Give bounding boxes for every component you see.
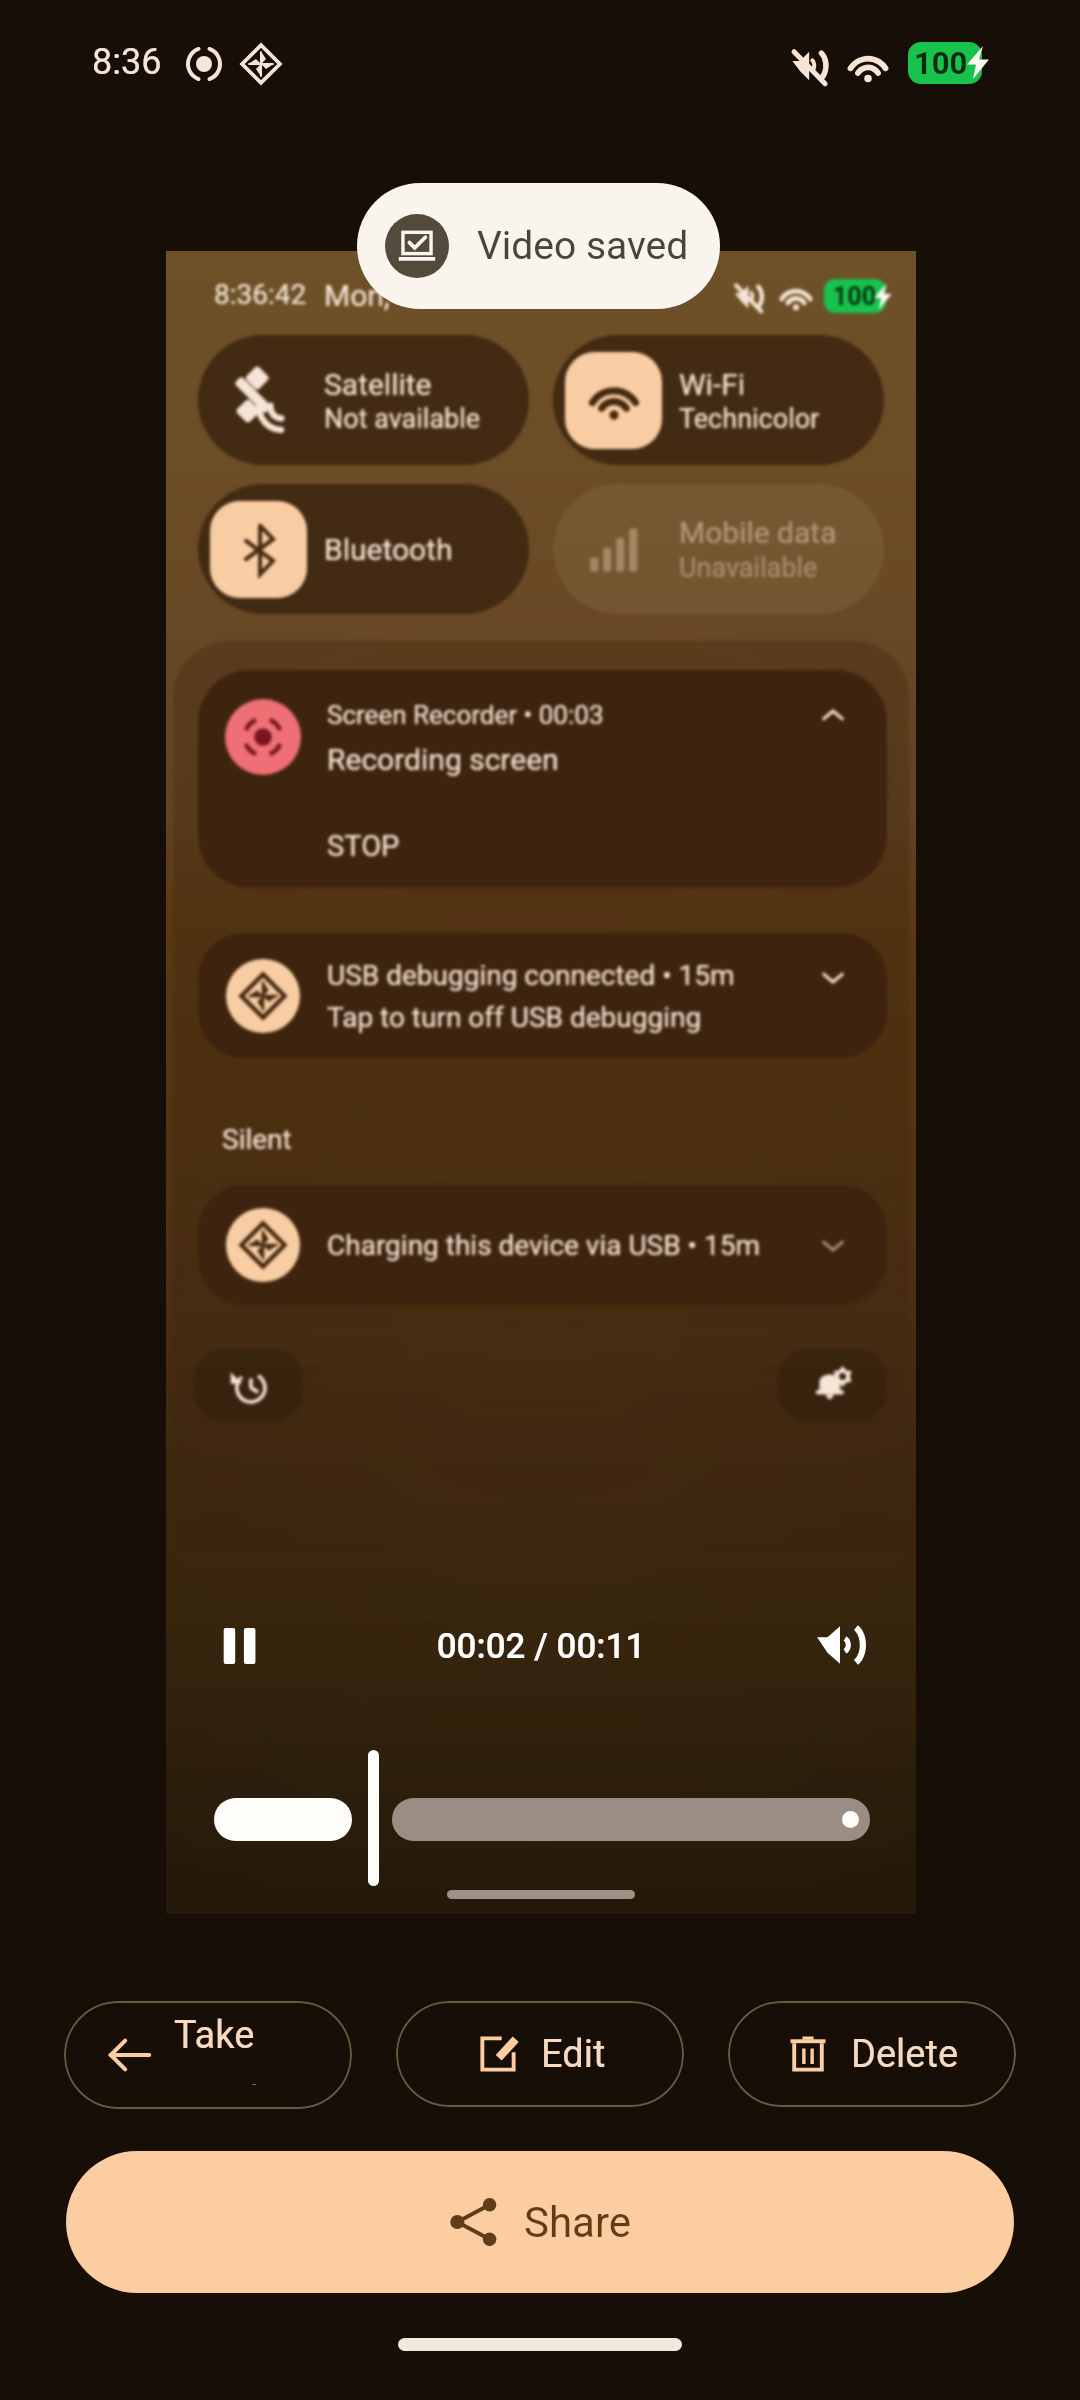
staticText: Not available — [324, 403, 481, 435]
staticText: Take another — [174, 2013, 304, 2085]
button[interactable]: Expand charging notification — [801, 1213, 865, 1277]
staticText: 8:36 — [92, 41, 162, 83]
button[interactable]: Share — [66, 2151, 1014, 2293]
button[interactable]: History — [194, 1349, 303, 1422]
staticText: Wi-Fi — [679, 367, 746, 402]
staticText: Screen Recorder • 00:03 — [327, 700, 604, 730]
button[interactable]: Delete — [728, 2001, 1016, 2107]
button[interactable]: Volume — [814, 1619, 866, 1671]
staticText: Recording screen — [327, 742, 559, 777]
staticText: Delete — [851, 2032, 959, 2077]
button[interactable]: STOP — [313, 818, 433, 874]
button[interactable]: Bluetooth — [198, 484, 529, 614]
button[interactable]: Satellite — [198, 335, 529, 465]
staticText: 00:02 / 00:11 — [166, 1626, 916, 1667]
button[interactable]: Video saved — [357, 183, 720, 309]
button[interactable]: Collapse notification — [801, 684, 865, 748]
staticText: Tap to turn off USB debugging — [327, 1001, 702, 1034]
button[interactable]: USB debugging connected • 15m — [198, 933, 887, 1058]
staticText: Share — [524, 2198, 632, 2247]
staticText: Mon, — [324, 278, 390, 313]
staticText: Edit — [541, 2032, 606, 2077]
staticText: Silent — [222, 1123, 292, 1156]
staticText: Bluetooth — [324, 532, 453, 567]
staticText: Unavailable — [679, 552, 818, 584]
staticText: 100 — [914, 45, 968, 81]
button[interactable]: Wi-Fi — [553, 335, 884, 465]
button[interactable]: Edit — [396, 2001, 684, 2107]
staticText: STOP — [327, 829, 400, 863]
staticText: Mobile data — [679, 515, 837, 550]
button[interactable]: Screen Recorder • 00:03 — [198, 670, 887, 888]
staticText: USB debugging connected • 15m — [327, 959, 735, 992]
staticText: 100 — [833, 282, 877, 311]
button[interactable]: Mobile data — [553, 484, 884, 614]
button[interactable]: Notification settings — [778, 1349, 887, 1422]
staticText: Video saved — [477, 223, 689, 269]
button[interactable]: Expand notification — [801, 945, 865, 1009]
button[interactable]: Charging this device via USB • 15m — [198, 1185, 887, 1305]
staticText: Technicolor — [679, 403, 820, 435]
button[interactable]: Take another — [64, 2001, 352, 2109]
staticText: Satellite — [324, 367, 432, 402]
button[interactable]: Pause — [220, 1623, 266, 1669]
staticText: 8:36:42 — [214, 278, 307, 311]
staticText: Charging this device via USB • 15m — [327, 1229, 760, 1262]
